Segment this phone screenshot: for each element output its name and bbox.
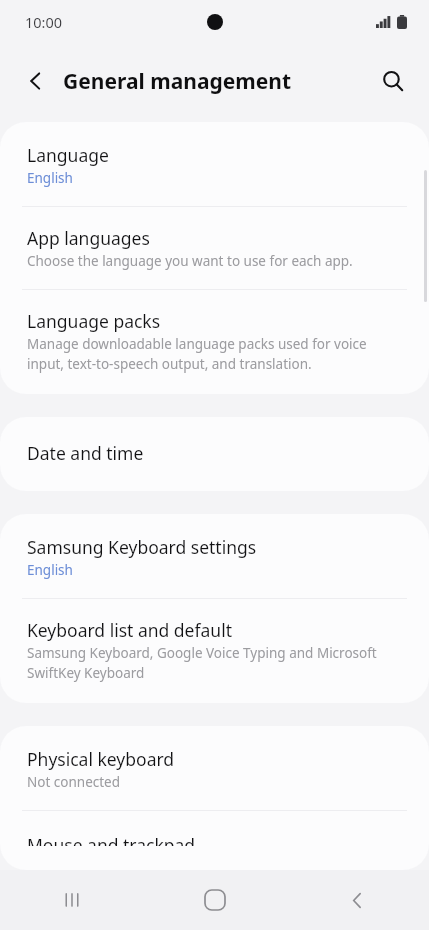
staticText: Samsung Keyboard settings	[27, 535, 257, 559]
button[interactable]: Date and time	[0, 417, 429, 491]
staticText: App languages	[27, 226, 150, 250]
button[interactable]: Home	[143, 870, 286, 930]
button[interactable]: Back	[14, 59, 58, 103]
button[interactable]: Search	[371, 59, 415, 103]
button[interactable]: App languages	[0, 207, 429, 289]
button[interactable]: Physical keyboard	[0, 726, 429, 810]
staticText: Manage downloadable language packs used …	[27, 335, 405, 373]
staticText: Language	[27, 143, 109, 167]
staticText: Language packs	[27, 309, 161, 333]
staticText: Not connected	[27, 773, 121, 791]
staticText: English	[27, 561, 73, 579]
staticText: General management	[63, 67, 292, 96]
button[interactable]: Samsung Keyboard settings	[0, 514, 429, 598]
button[interactable]: Keyboard list and default	[0, 599, 429, 703]
staticText: Mouse and trackpad	[27, 833, 196, 846]
staticText: Keyboard list and default	[27, 618, 232, 642]
button[interactable]: Mouse and trackpad	[0, 811, 429, 870]
staticText: Choose the language you want to use for …	[27, 252, 353, 270]
staticText: English	[27, 169, 73, 187]
button[interactable]: Back	[286, 870, 429, 930]
staticText: Date and time	[27, 441, 144, 465]
staticText: Physical keyboard	[27, 747, 175, 771]
staticText: Samsung Keyboard, Google Voice Typing an…	[27, 644, 405, 682]
button[interactable]: Language packs	[0, 290, 429, 394]
button[interactable]: Recent apps	[0, 870, 143, 930]
button[interactable]: Language	[0, 122, 429, 206]
staticText: 10:00	[25, 12, 63, 32]
